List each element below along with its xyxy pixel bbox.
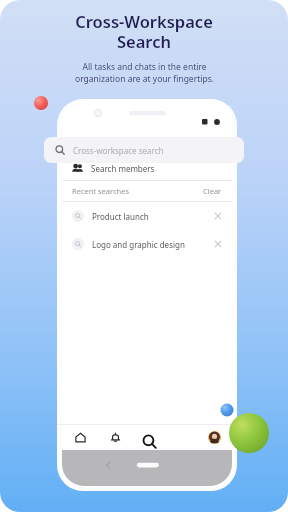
staticText: All tasks and chats in the entire organi… (75, 61, 214, 85)
staticText: Recent searches (72, 186, 130, 196)
button[interactable]: Product launch (62, 202, 232, 230)
button[interactable]: Search (136, 428, 163, 455)
staticText: Product launch (92, 211, 149, 222)
button[interactable]: Home (73, 430, 88, 445)
button[interactable]: Profile (208, 431, 221, 444)
button[interactable]: Remove (213, 211, 223, 221)
staticText: Clear (203, 186, 222, 196)
staticText: Cross-Workspace Search (75, 10, 213, 53)
button[interactable]: Logo and graphic design (62, 230, 232, 258)
staticText: Cross-workspace search (73, 145, 164, 156)
staticText: Logo and graphic design (92, 239, 185, 250)
button[interactable]: Search members (62, 156, 232, 180)
staticText: Search members (91, 163, 155, 174)
button[interactable]: Cross-workspace search (44, 137, 244, 163)
button[interactable]: Clear (203, 186, 222, 196)
button[interactable]: Notifications (108, 430, 123, 445)
button[interactable]: Remove (213, 239, 223, 249)
button[interactable]: Inbox (142, 430, 157, 445)
